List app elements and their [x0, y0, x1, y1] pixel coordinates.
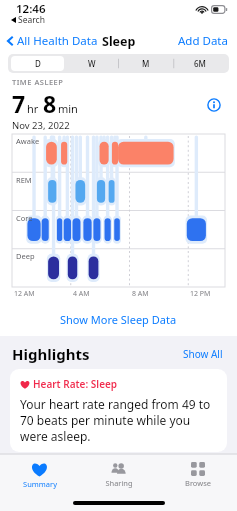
button[interactable]: Sharing [79, 455, 158, 495]
staticText: hr [27, 101, 39, 116]
staticText: Nov 23, 2022 [12, 119, 70, 132]
staticText: Your heart rate ranged from 49 to 70 bea… [20, 396, 217, 444]
staticText: Core [16, 213, 33, 223]
staticText: 6M [194, 58, 206, 69]
button[interactable]: 6M [174, 56, 226, 71]
staticText: W [88, 58, 96, 69]
staticText: Highlights [12, 344, 90, 364]
staticText: Sharing [105, 478, 133, 488]
staticText: Browse [185, 478, 211, 488]
staticText: D [35, 58, 41, 69]
staticText: 4 AM [73, 289, 90, 299]
staticText: 12 PM [190, 289, 211, 299]
staticText: Deep [16, 251, 35, 261]
staticText: All Health Data [17, 33, 98, 49]
staticText: 8 [43, 88, 57, 119]
staticText: 8 AM [132, 289, 149, 299]
staticText: Summary [23, 479, 57, 489]
staticText: 12 AM [14, 289, 35, 299]
staticText: Awake [16, 136, 40, 146]
staticText: REM [16, 175, 32, 185]
button[interactable]: Show More Sleep Data [0, 308, 237, 331]
staticText: 12:46 [16, 1, 46, 17]
button[interactable]: Browse [158, 455, 237, 495]
button[interactable]: D [11, 56, 64, 71]
button[interactable]: Show All [181, 345, 225, 363]
button[interactable]: All Health Data [5, 29, 100, 53]
staticText: Search [18, 14, 45, 26]
button[interactable]: W [66, 56, 118, 71]
staticText: Show More Sleep Data [60, 312, 177, 327]
staticText: 7 [12, 88, 26, 119]
button[interactable]: About sleep data [203, 94, 225, 116]
staticText: min [58, 101, 78, 116]
button[interactable]: Add Data [176, 31, 230, 51]
button[interactable]: M [120, 56, 172, 71]
staticText: Sleep [102, 33, 136, 50]
staticText: M [142, 58, 150, 69]
staticText: Heart Rate: Sleep [33, 377, 118, 391]
button[interactable]: Summary [0, 455, 79, 495]
staticText: TIME ASLEEP [12, 77, 64, 87]
button[interactable]: Heart Rate: Sleep [10, 369, 227, 452]
